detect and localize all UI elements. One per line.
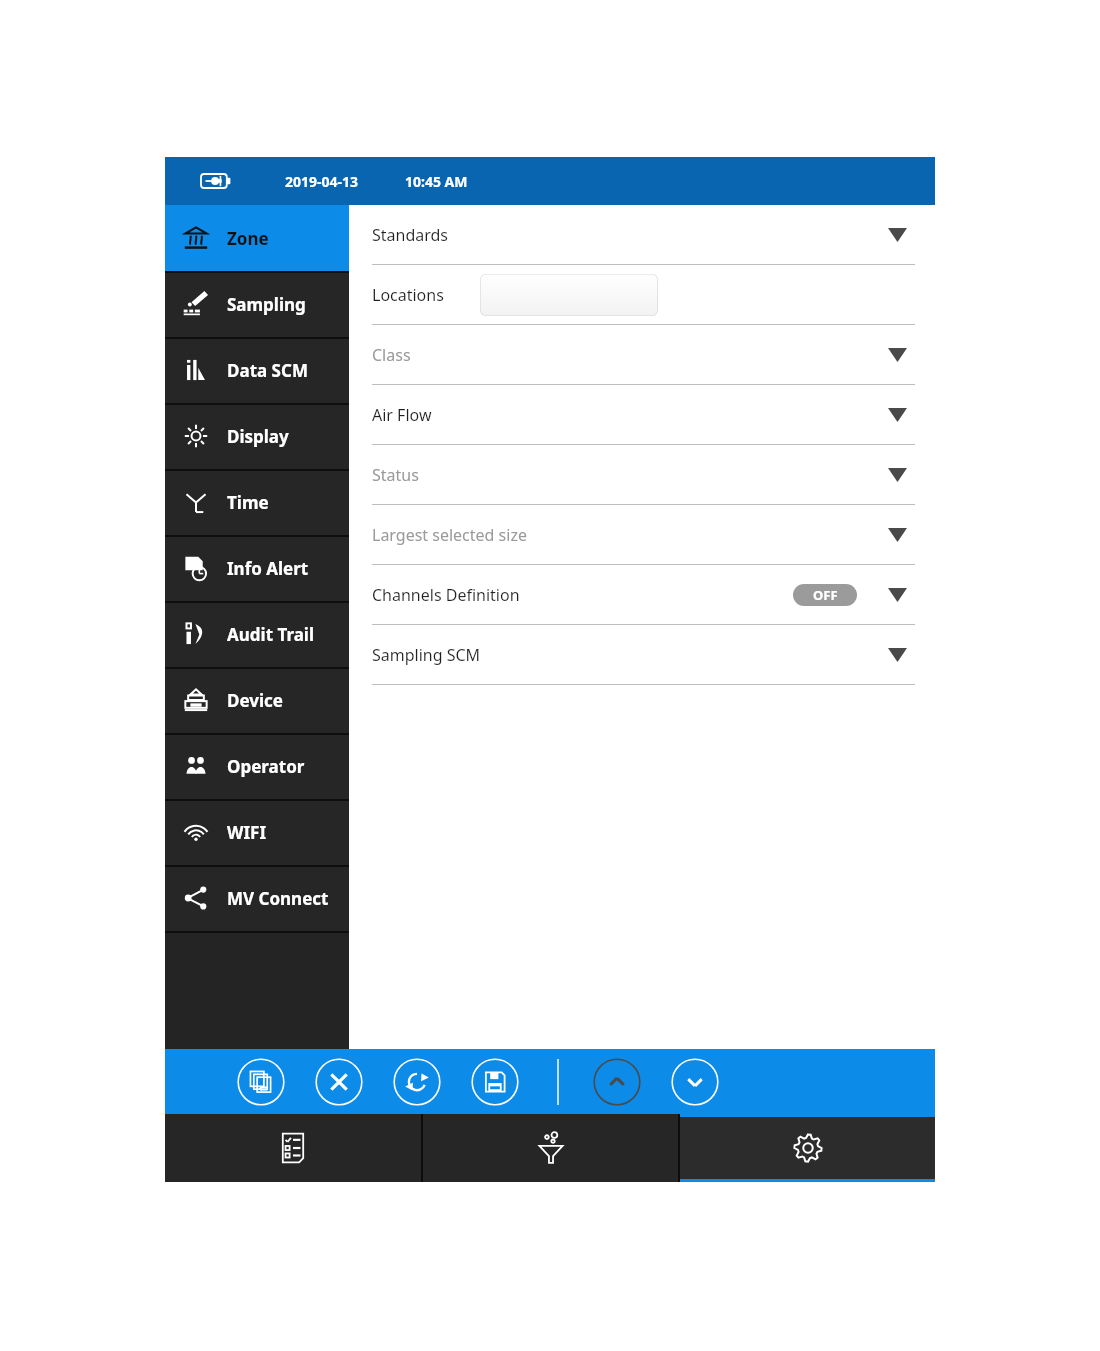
staticText: Zone [227, 227, 269, 250]
staticText: 10:45 AM [405, 172, 468, 191]
staticText: OFF [813, 586, 838, 604]
staticText: Standards [372, 224, 449, 246]
staticText: Sampling SCM [372, 644, 481, 666]
staticText: Display [227, 425, 289, 448]
button[interactable]: Sampling SCM [372, 625, 915, 685]
button[interactable]: OFF [793, 584, 857, 606]
button[interactable]: Expand Channels Definition [879, 577, 915, 613]
button[interactable]: Info Alert [165, 535, 349, 601]
staticText: Info Alert [227, 557, 309, 580]
staticText: MV Connect [227, 887, 329, 910]
staticText: Data SCM [227, 359, 308, 382]
staticText: Sampling [227, 293, 306, 316]
button[interactable] [480, 274, 658, 316]
button[interactable]: Refresh [393, 1058, 441, 1106]
button[interactable]: Scroll down [671, 1058, 719, 1106]
button[interactable]: Locations [372, 265, 915, 325]
button[interactable]: Expand Air Flow [879, 397, 915, 433]
button[interactable]: Expand Standards [879, 217, 915, 253]
button[interactable]: Audit Trail [165, 601, 349, 667]
staticText: Status [372, 464, 419, 486]
button[interactable]: MV Connect [165, 865, 349, 931]
button[interactable]: Scroll up [593, 1058, 641, 1106]
button[interactable]: Expand Class [879, 337, 915, 373]
button[interactable]: Operator [165, 733, 349, 799]
button[interactable]: Channels Definition [372, 565, 915, 625]
button[interactable]: Expand Status [879, 457, 915, 493]
button[interactable]: Save [471, 1058, 519, 1106]
button[interactable]: Settings [680, 1114, 935, 1182]
button[interactable]: Expand Largest selected size [879, 517, 915, 553]
staticText: WIFI [227, 821, 266, 844]
button[interactable]: Time [165, 469, 349, 535]
button[interactable]: Data SCM [165, 337, 349, 403]
staticText: 2019-04-13 [285, 172, 359, 191]
button[interactable]: WIFI [165, 799, 349, 865]
button[interactable]: Standards [372, 205, 915, 265]
button[interactable]: Sampling filter [423, 1114, 678, 1182]
staticText: Time [227, 491, 269, 514]
button[interactable]: Zone [165, 205, 349, 271]
button[interactable]: Copy [237, 1058, 285, 1106]
staticText: Class [372, 344, 411, 366]
button[interactable]: Expand Sampling SCM [879, 637, 915, 673]
button[interactable]: Reports [165, 1114, 421, 1182]
staticText: Channels Definition [372, 584, 520, 606]
staticText: Largest selected size [372, 524, 527, 546]
button[interactable]: Display [165, 403, 349, 469]
staticText: Audit Trail [227, 623, 314, 646]
staticText: Operator [227, 755, 305, 778]
button[interactable]: Status [372, 445, 915, 505]
button[interactable]: Air Flow [372, 385, 915, 445]
staticText: Air Flow [372, 404, 432, 426]
button[interactable]: Class [372, 325, 915, 385]
button[interactable]: Device [165, 667, 349, 733]
staticText: Device [227, 689, 283, 712]
button[interactable]: Sampling [165, 271, 349, 337]
button[interactable]: Cancel [315, 1058, 363, 1106]
button[interactable]: Largest selected size [372, 505, 915, 565]
staticText: Locations [372, 284, 444, 306]
